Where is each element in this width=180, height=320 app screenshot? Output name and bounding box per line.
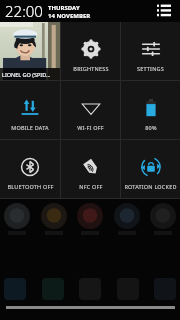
staticText: MOBILE DATA xyxy=(11,124,49,131)
other: Rotation locked xyxy=(141,157,161,177)
staticText: LIONEL GO (SPID… xyxy=(2,71,51,78)
button[interactable]: Wi-Fi off xyxy=(61,81,120,139)
button[interactable]: Mobile data xyxy=(0,81,60,139)
other: Wi-Fi off xyxy=(81,98,101,118)
other: Mobile data xyxy=(20,98,40,118)
button[interactable]: Battery 80 percent xyxy=(121,81,180,139)
staticText: SETTINGS xyxy=(137,65,164,72)
staticText: 14 NOVEMBER xyxy=(48,12,91,20)
other: NFC off xyxy=(81,157,101,177)
other: Settings xyxy=(141,39,161,59)
staticText: BRIGHTNESS xyxy=(73,65,109,72)
staticText: NFC OFF xyxy=(79,183,103,190)
staticText: 22:00 xyxy=(5,1,43,21)
staticText: THURSDAY xyxy=(48,4,80,12)
staticText: ROTATION LOCKED xyxy=(124,183,177,190)
button[interactable]: Bluetooth off xyxy=(0,140,60,198)
staticText: WI-FI OFF xyxy=(77,124,104,131)
staticText: 80% xyxy=(145,124,157,131)
other: Brightness xyxy=(81,39,101,59)
other: Battery 80 percent xyxy=(141,98,161,118)
button[interactable]: Settings xyxy=(121,22,180,80)
button[interactable]: LIONEL GO (SPID… xyxy=(0,22,60,80)
button[interactable]: Brightness xyxy=(61,22,120,80)
button[interactable]: Rotation locked xyxy=(121,140,180,198)
staticText: BLUETOOTH OFF xyxy=(7,183,54,190)
other: Bluetooth off xyxy=(20,157,40,177)
button[interactable]: Quick settings list xyxy=(154,1,174,21)
button[interactable]: NFC off xyxy=(61,140,120,198)
